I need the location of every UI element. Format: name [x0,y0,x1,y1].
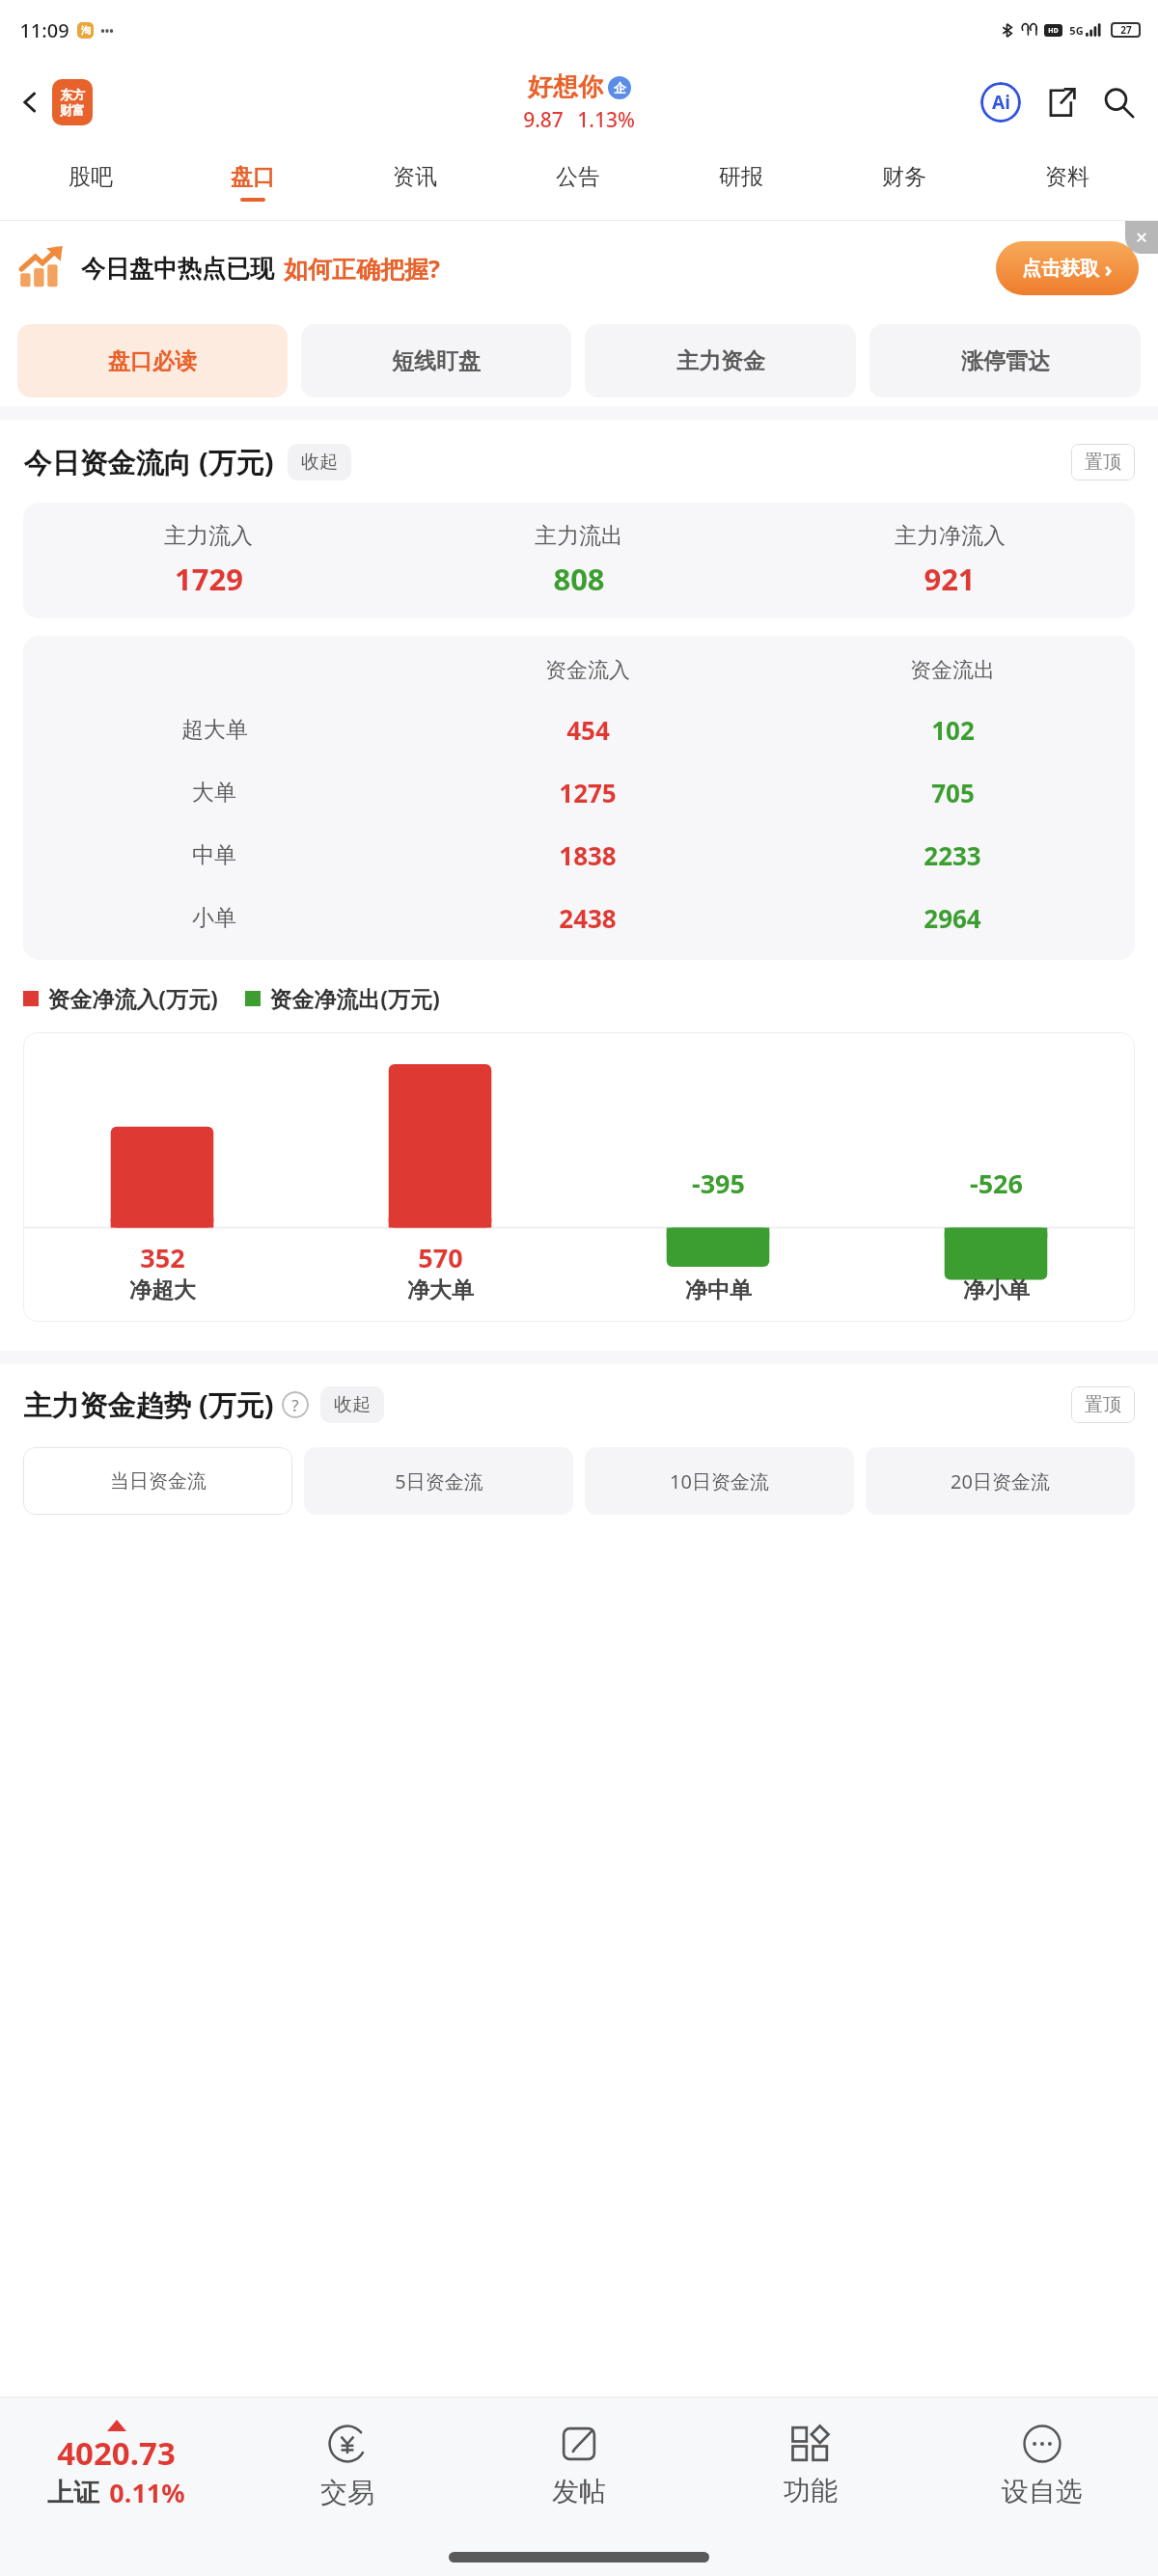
staticText: 1275 [559,776,617,809]
staticText: › [1104,254,1113,283]
staticText: 收起 [301,451,338,474]
staticText: 5G [1069,23,1084,38]
staticText: 0.11% [109,2475,185,2510]
staticText: 盘口必读 [108,347,197,375]
button[interactable]: 收起 [288,444,351,480]
button[interactable]: 主力资金 [585,324,856,397]
staticText: 设自选 [1002,2475,1083,2508]
staticText: 净超大 [129,1276,196,1304]
button[interactable]: 资讯 [334,145,496,220]
button[interactable]: Back [12,73,98,131]
staticText: 资讯 [393,163,437,191]
staticText: 主力资金 [676,347,765,375]
button[interactable]: 点击获取 [996,241,1139,295]
staticText: 淘 [81,24,91,37]
staticText: 收起 [334,1393,371,1416]
staticText: 超大单 [181,716,248,744]
staticText: 2964 [924,901,981,935]
staticText: 研报 [719,163,763,191]
button[interactable]: 盘口 [172,145,334,220]
staticText: 454 [566,713,610,747]
staticText: 如何正确把握? [284,252,440,285]
staticText: -395 [692,1165,745,1201]
staticText: 1838 [559,838,617,872]
button[interactable]: 研报 [659,145,822,220]
staticText: 净中单 [685,1276,752,1304]
staticText: 小单 [192,904,236,932]
button[interactable]: 设自选 [926,2398,1158,2533]
button[interactable]: 公告 [496,145,659,220]
button[interactable]: Help [282,1391,309,1418]
staticText: 921 [924,559,976,599]
staticText: 主力流入 [164,522,253,550]
button[interactable]: 置顶 [1071,444,1135,480]
staticText: 财务 [882,163,926,191]
staticText: ✕ [1135,229,1148,247]
staticText: 功能 [784,2474,838,2507]
staticText: -526 [970,1165,1023,1201]
button[interactable]: 交易 [232,2398,463,2533]
button[interactable]: 收起 [320,1386,384,1423]
staticText: 上证 [47,2477,99,2509]
staticText: 1.13% [577,106,635,134]
staticText: 中单 [192,841,236,869]
button[interactable]: 资料 [985,145,1148,220]
staticText: 4020.73 [57,2431,176,2475]
staticText: 5日资金流 [395,1468,483,1494]
staticText: ••• [100,23,114,39]
staticText: 主力资金趋势 (万元) [23,1385,274,1424]
staticText: 净小单 [963,1276,1030,1304]
button[interactable]: 财务 [822,145,985,220]
button[interactable]: Share [1038,80,1083,124]
staticText: 点击获取 [1022,257,1099,281]
button[interactable]: 4020.73 [0,2398,232,2533]
staticText: 净大单 [407,1276,474,1304]
staticText: 主力流出 [535,522,623,550]
button[interactable]: 20日资金流 [866,1447,1135,1515]
staticText: 570 [418,1240,463,1275]
button[interactable]: Close ad [1125,221,1158,254]
staticText: 20日资金流 [951,1468,1050,1494]
staticText: 资金流入 [545,657,630,684]
staticText: 2438 [559,901,617,935]
staticText: 10日资金流 [670,1468,769,1494]
staticText: 短线盯盘 [392,347,481,375]
staticText: 9.87 [523,106,564,134]
staticText: 27 [1120,23,1132,37]
button[interactable]: 置顶 [1071,1386,1135,1423]
button[interactable]: 盘口必读 [17,324,288,397]
button[interactable]: 5日资金流 [304,1447,573,1515]
staticText: 发帖 [552,2475,606,2508]
staticText: 资金流出 [910,657,995,684]
staticText: 705 [931,776,975,809]
button[interactable]: 股吧 [10,145,172,220]
button[interactable]: 10日资金流 [585,1447,854,1515]
staticText: 大单 [192,779,236,807]
staticText: 企 [614,80,626,96]
staticText: 好想你 [528,71,603,103]
button[interactable]: 发帖 [463,2398,695,2533]
staticText: Ai [992,90,1010,115]
button[interactable]: AI assistant [979,80,1023,124]
staticText: 102 [931,713,975,747]
button[interactable]: 功能 [695,2398,926,2533]
staticText: 资金净流入(万元) [47,983,218,1013]
button[interactable]: 短线盯盘 [301,324,571,397]
staticText: 资金净流出(万元) [269,983,440,1013]
staticText: 涨停雷达 [961,347,1050,375]
staticText: 公告 [556,163,600,191]
staticText: 当日资金流 [110,1469,207,1494]
staticText: HD [1048,26,1059,36]
staticText: 盘口 [231,163,275,191]
staticText: 主力净流入 [895,522,1006,550]
staticText: 股吧 [69,163,113,191]
staticText: 资料 [1045,163,1089,191]
staticText: 11:09 [19,17,69,43]
staticText: 352 [140,1240,185,1275]
button[interactable]: Search [1096,80,1141,124]
staticText: 东方 [60,87,85,102]
button[interactable]: 当日资金流 [23,1447,292,1515]
button[interactable]: 涨停雷达 [869,324,1141,397]
staticText: ? [291,1394,299,1416]
staticText: 1729 [175,559,243,599]
